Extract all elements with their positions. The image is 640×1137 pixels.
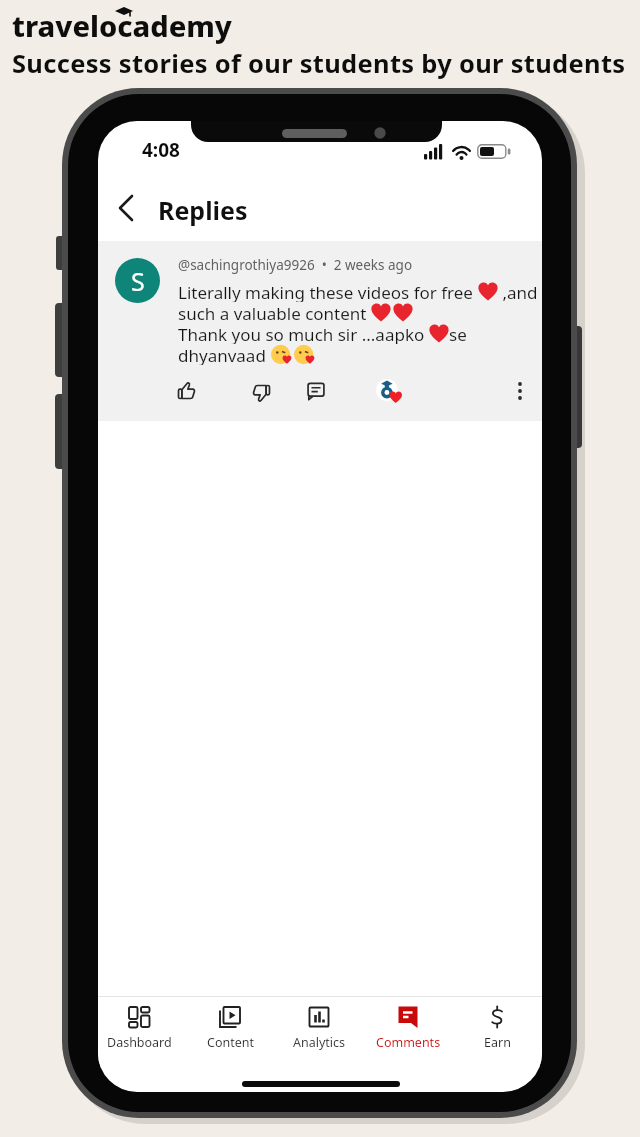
staticText: S [131, 264, 145, 298]
button[interactable] [307, 382, 325, 400]
button[interactable] [376, 378, 402, 404]
staticText: such a valuable content [178, 302, 371, 323]
button[interactable] [253, 385, 270, 402]
staticText: Replies [158, 193, 248, 227]
button[interactable]: Earn [453, 1006, 541, 1051]
staticText: dhyanvaad [178, 344, 271, 365]
button[interactable] [112, 191, 142, 225]
staticText: Earn [484, 1034, 511, 1051]
button[interactable]: Content [186, 1006, 274, 1051]
staticText: Dashboard [107, 1034, 172, 1051]
staticText: Success stories of our students by our s… [12, 46, 626, 81]
staticText: se [449, 323, 467, 344]
button[interactable] [517, 381, 523, 401]
button[interactable]: S [115, 258, 160, 303]
staticText: Literally making these videos for free [178, 281, 478, 302]
button[interactable]: Analytics [275, 1006, 363, 1051]
button[interactable] [178, 382, 195, 399]
staticText: Analytics [293, 1034, 346, 1051]
staticText: ,and [498, 281, 538, 302]
staticText: Content [207, 1034, 254, 1051]
button[interactable]: Comments [364, 1006, 452, 1051]
staticText: @sachingrothiya9926 • 2 weeks ago [178, 256, 413, 274]
staticText: Comments [376, 1034, 441, 1051]
staticText: Thank you so much sir ...aapko [178, 323, 429, 344]
staticText: travelocademy [12, 6, 232, 45]
staticText: 4:08 [142, 137, 180, 163]
button[interactable]: Dashboard [98, 1006, 183, 1051]
